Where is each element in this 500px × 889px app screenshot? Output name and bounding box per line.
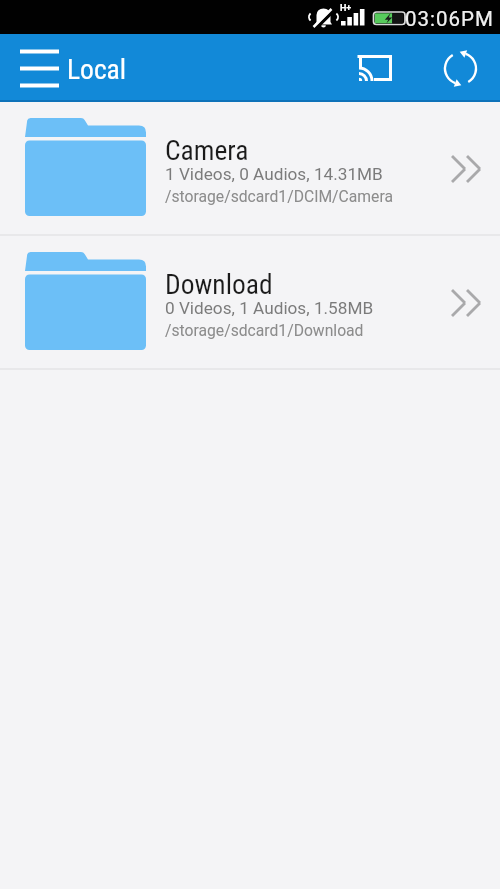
button[interactable] — [347, 44, 403, 94]
staticText: Camera — [165, 134, 249, 166]
staticText: 1 Videos, 0 Audios, 14.31MB — [165, 164, 383, 184]
button[interactable] — [12, 43, 67, 95]
staticText: 03:06PM — [405, 7, 494, 31]
button[interactable] — [434, 42, 488, 96]
staticText: 0 Videos, 1 Audios, 1.58MB — [165, 298, 374, 318]
staticText: /storage/sdcard1/Download — [165, 321, 364, 339]
staticText: H+ — [340, 3, 352, 14]
staticText: Local — [67, 53, 127, 85]
button[interactable]: Camera — [0, 102, 500, 234]
button[interactable]: Download — [0, 236, 500, 368]
staticText: /storage/sdcard1/DCIM/Camera — [165, 187, 393, 205]
staticText: Download — [165, 268, 273, 300]
